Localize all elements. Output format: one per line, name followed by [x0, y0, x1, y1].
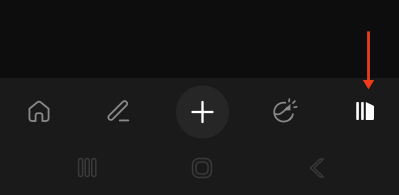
- button[interactable]: Compose: [88, 77, 148, 144]
- button[interactable]: New: [167, 78, 237, 145]
- button[interactable]: Recent apps: [27, 144, 147, 192]
- button[interactable]: Back: [257, 144, 377, 192]
- button[interactable]: Library: [335, 77, 395, 144]
- button[interactable]: Discover: [255, 77, 315, 144]
- button[interactable]: Home: [9, 77, 69, 144]
- button[interactable]: Home: [142, 144, 262, 192]
